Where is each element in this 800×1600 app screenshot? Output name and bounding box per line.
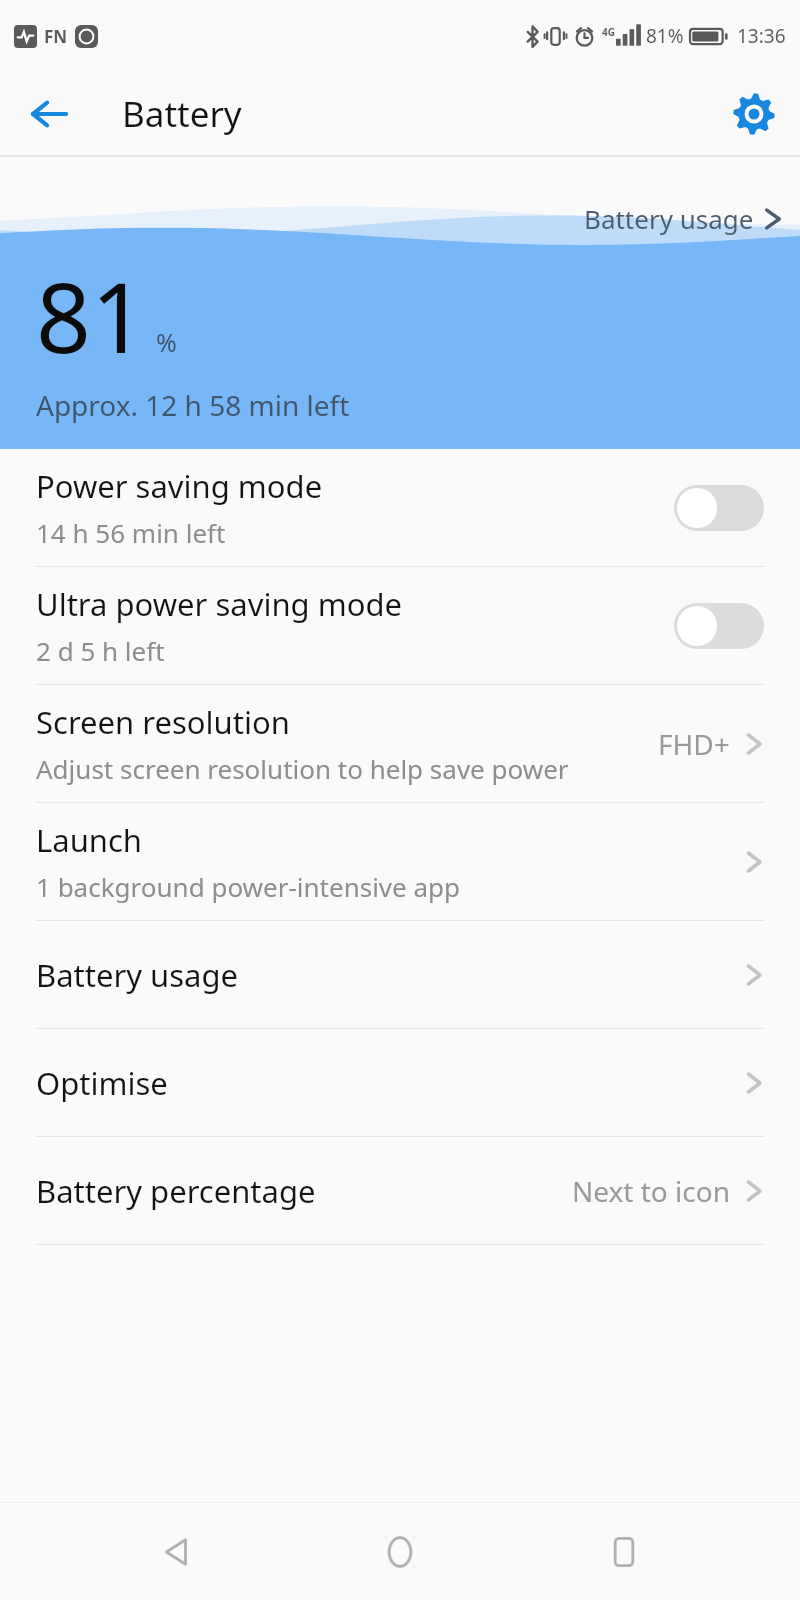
- staticText: 81%: [646, 23, 684, 49]
- staticText: Battery percentage: [36, 1170, 316, 1212]
- button[interactable]: Battery percentage: [0, 1137, 800, 1244]
- staticText: FN: [44, 25, 68, 48]
- staticText: 81: [36, 250, 146, 381]
- staticText: 13:36: [737, 23, 786, 49]
- staticText: 4G: [602, 25, 615, 39]
- staticText: FHD+: [658, 725, 730, 763]
- staticText: Adjust screen resolution to help save po…: [36, 751, 569, 786]
- staticText: Next to icon: [572, 1172, 730, 1210]
- button[interactable]: Battery usage: [0, 921, 800, 1028]
- staticText: Optimise: [36, 1062, 168, 1104]
- button[interactable]: Screen resolution: [0, 685, 800, 802]
- staticText: Screen resolution: [36, 701, 290, 743]
- staticText: Approx. 12 h 58 min left: [36, 386, 350, 424]
- button[interactable]: Home: [352, 1504, 448, 1600]
- button[interactable]: Power saving mode: [0, 449, 800, 566]
- button[interactable]: Launch: [0, 803, 800, 920]
- button[interactable]: Back: [22, 87, 76, 141]
- staticText: Battery usage: [584, 201, 754, 236]
- staticText: 14 h 56 min left: [36, 515, 226, 550]
- staticText: Ultra power saving mode: [36, 583, 402, 625]
- staticText: 1 background power-intensive app: [36, 869, 461, 904]
- staticText: 2 d 5 h left: [36, 633, 165, 668]
- staticText: %: [156, 325, 177, 359]
- staticText: Launch: [36, 819, 142, 861]
- other: Toggle: [674, 485, 764, 531]
- other: Toggle: [674, 603, 764, 649]
- button[interactable]: Ultra power saving mode: [0, 567, 800, 684]
- button[interactable]: Optimise: [0, 1029, 800, 1136]
- button[interactable]: Battery usage: [580, 199, 786, 238]
- button[interactable]: Recents: [576, 1504, 672, 1600]
- button[interactable]: Settings: [726, 86, 782, 142]
- staticText: Battery: [122, 90, 242, 138]
- button[interactable]: Back: [128, 1504, 224, 1600]
- staticText: Battery usage: [36, 954, 239, 996]
- staticText: Power saving mode: [36, 465, 323, 507]
